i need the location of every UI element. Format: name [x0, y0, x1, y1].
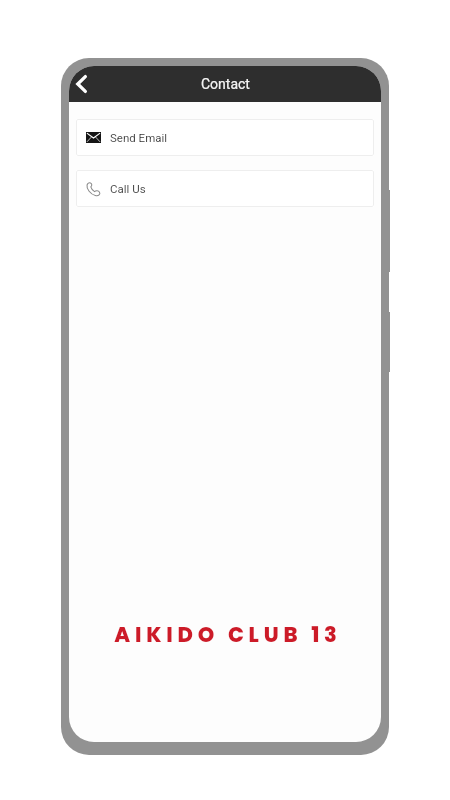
staticText: AIKIDO CLUB 13 [114, 620, 342, 649]
staticText: Call Us [110, 182, 146, 195]
staticText: Contact [201, 76, 250, 92]
button[interactable]: Call Us [76, 170, 374, 207]
button[interactable]: Back [69, 66, 95, 102]
staticText: Send Email [110, 131, 168, 144]
button[interactable]: Send Email [76, 119, 374, 156]
